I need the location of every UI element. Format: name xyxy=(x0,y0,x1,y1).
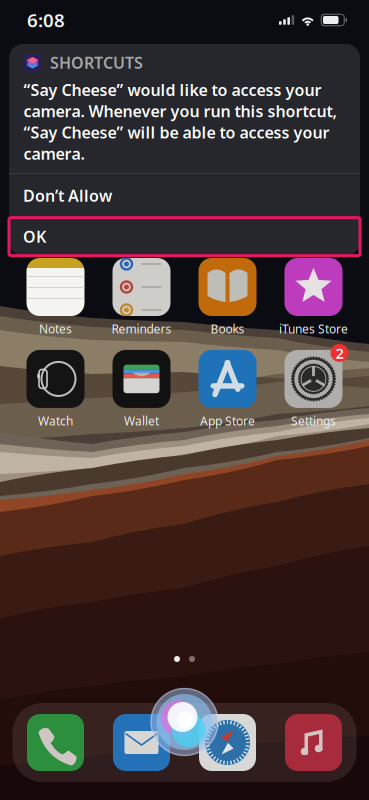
staticText: SHORTCUTS xyxy=(50,52,143,73)
button[interactable]: Reminders xyxy=(98,258,184,337)
staticText: Notes xyxy=(39,321,72,337)
staticText: 2 xyxy=(335,343,343,363)
staticText: 6:08 xyxy=(27,8,65,32)
button[interactable]: 2 xyxy=(270,350,356,429)
staticText: Don’t Allow xyxy=(23,185,112,206)
button[interactable]: App Store xyxy=(184,350,270,429)
button[interactable]: Notes xyxy=(12,258,98,337)
button[interactable] xyxy=(98,714,184,771)
button[interactable] xyxy=(270,714,356,771)
staticText: Reminders xyxy=(111,321,171,337)
staticText: iTunes Store xyxy=(279,321,348,337)
staticText: OK xyxy=(23,226,46,247)
button[interactable]: iTunes Store xyxy=(270,258,356,337)
button[interactable]: Books xyxy=(184,258,270,337)
staticText: Watch xyxy=(38,413,73,429)
staticText: Books xyxy=(210,321,244,337)
staticText: Settings xyxy=(291,413,336,429)
staticText: App Store xyxy=(200,413,255,429)
button[interactable]: Wallet xyxy=(98,350,184,429)
button[interactable]: Don’t Allow xyxy=(9,174,360,217)
staticText: “Say Cheese” would like to access your c… xyxy=(23,79,336,164)
button[interactable]: OK xyxy=(9,218,360,256)
button[interactable]: Watch xyxy=(12,350,98,429)
button[interactable] xyxy=(12,714,98,771)
staticText: Wallet xyxy=(124,413,159,429)
button[interactable] xyxy=(184,714,270,771)
